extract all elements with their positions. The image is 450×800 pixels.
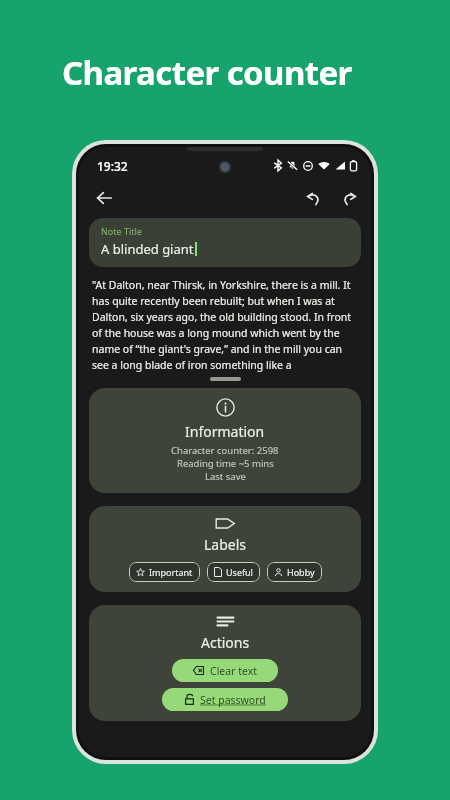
button[interactable]: Back xyxy=(89,183,119,213)
staticText: Labels xyxy=(204,535,247,554)
staticText: Last save xyxy=(205,470,246,483)
button[interactable]: Note Title xyxy=(89,218,361,267)
button[interactable]: Actions xyxy=(89,605,361,721)
staticText: Hobby xyxy=(287,566,315,578)
staticText: Useful xyxy=(226,566,253,578)
staticText: Reading time ~5 mins xyxy=(177,457,274,470)
button[interactable]: Undo xyxy=(299,184,327,212)
button[interactable]: Information xyxy=(89,388,361,493)
button[interactable]: Useful xyxy=(207,562,260,582)
staticText: Actions xyxy=(201,633,250,652)
staticText: Set password xyxy=(200,693,266,707)
staticText: Information xyxy=(185,422,265,441)
button[interactable]: Hobby xyxy=(267,562,322,582)
staticText: Clear text xyxy=(210,664,258,678)
staticText: A blinded giant xyxy=(101,240,194,258)
staticText: Important xyxy=(149,566,193,578)
staticText: Character counter: 2598 xyxy=(171,444,279,457)
staticText: Note Title xyxy=(101,225,142,237)
staticText: "At Dalton, near Thirsk, in Yorkshire, t… xyxy=(92,278,358,372)
button[interactable]: Labels xyxy=(89,506,361,592)
button[interactable]: Important xyxy=(129,562,200,582)
button[interactable]: Clear text xyxy=(172,659,278,682)
staticText: Character counter xyxy=(62,50,352,95)
button[interactable]: Set password xyxy=(162,688,288,711)
staticText: 19:32 xyxy=(97,158,128,174)
button[interactable]: Redo xyxy=(335,184,363,212)
